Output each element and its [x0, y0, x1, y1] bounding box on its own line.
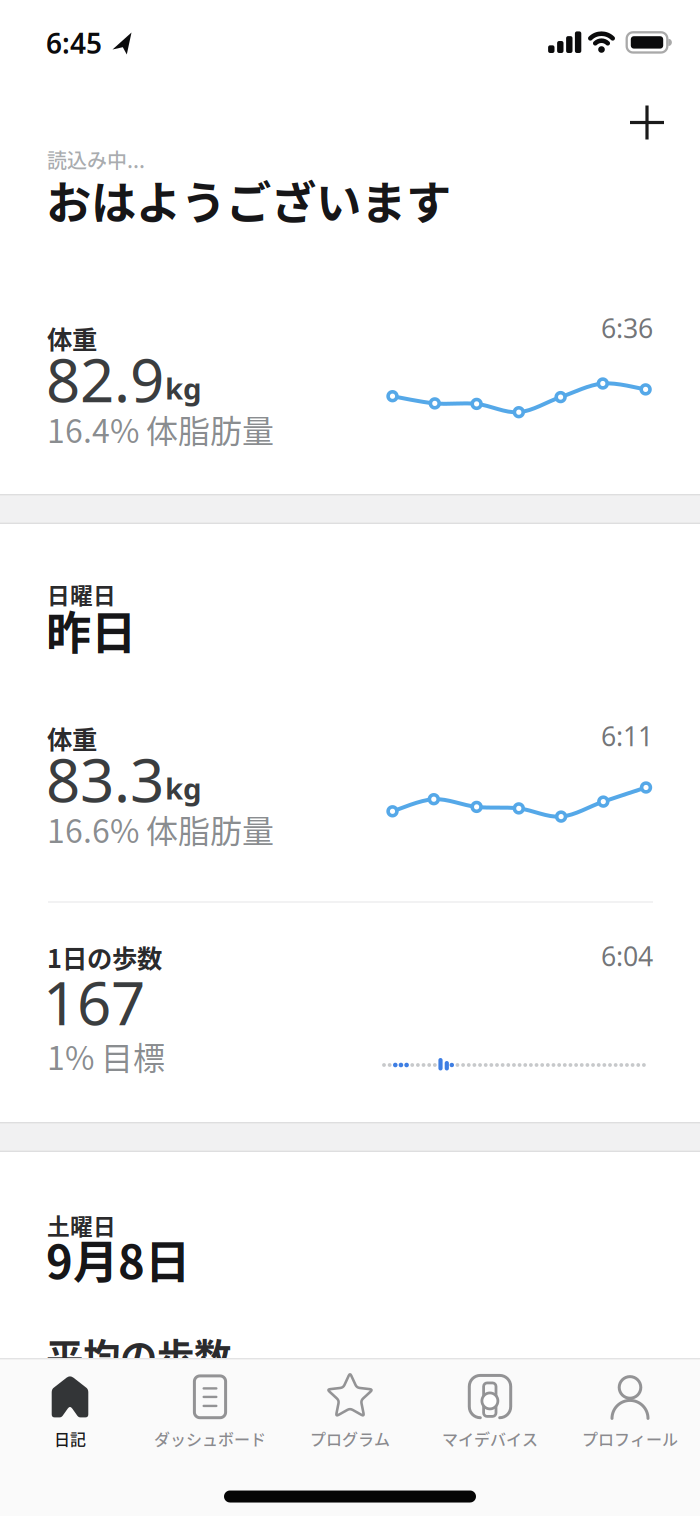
staticText: 6:36 [601, 310, 653, 346]
staticText: 82.9 [46, 339, 164, 419]
button[interactable]: 体重 [0, 690, 700, 870]
staticText: 16.4% 体脂肪量 [47, 406, 274, 452]
staticText: 体重 [47, 320, 97, 356]
button[interactable]: プロフィール [560, 1374, 700, 1450]
button[interactable]: ダッシュボード [140, 1374, 280, 1450]
staticText: プロフィール [582, 1427, 678, 1450]
staticText: 6:45 [46, 24, 102, 62]
staticText: 167 [43, 962, 145, 1042]
staticText: ダッシュボード [154, 1427, 266, 1450]
staticText: 土曜日 [47, 1209, 116, 1241]
staticText: おはようございます [46, 167, 451, 233]
button[interactable]: マイデバイス [420, 1374, 560, 1450]
staticText: 日曜日 [47, 578, 116, 610]
staticText: 83.3 [46, 739, 164, 819]
staticText: kg [165, 768, 202, 807]
staticText: マイデバイス [442, 1427, 538, 1450]
staticText: プログラム [310, 1427, 390, 1450]
staticText: 読込み中... [47, 145, 145, 174]
staticText: 1% 目標 [47, 1033, 165, 1079]
staticText: 日記 [54, 1427, 86, 1450]
button[interactable]: 体重 [0, 290, 700, 470]
staticText: 1日の歩数 [47, 939, 162, 975]
staticText: 16.6% 体脂肪量 [47, 806, 274, 852]
button[interactable]: 1日の歩数 [0, 925, 700, 1095]
staticText: 6:04 [601, 938, 653, 974]
staticText: 体重 [47, 720, 97, 756]
staticText: 6:11 [601, 718, 653, 754]
staticText: kg [165, 368, 202, 407]
button[interactable]: Add measurement [624, 99, 670, 145]
staticText: 9月8日 [46, 1226, 190, 1292]
staticText: 平均の歩数 [46, 1328, 231, 1382]
button[interactable]: プログラム [280, 1374, 420, 1450]
button[interactable]: 日記 [0, 1374, 140, 1450]
staticText: 昨日 [46, 597, 136, 663]
